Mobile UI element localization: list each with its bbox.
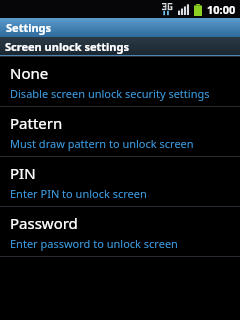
button[interactable]: None [0,57,240,106]
staticText: None [10,63,49,83]
button[interactable]: PIN [0,157,240,206]
staticText: Pattern [10,113,63,133]
button[interactable]: Password [0,207,240,256]
staticText: Screen unlock settings [5,39,129,54]
staticText: PIN [10,163,36,183]
staticText: Settings [6,20,52,35]
other: 3G network [162,3,173,16]
other: Signal strength [178,4,189,15]
staticText: Enter PIN to unlock screen [10,186,147,201]
staticText: Enter password to unlock screen [10,236,178,251]
other: Battery [194,4,202,16]
button[interactable]: Pattern [0,107,240,156]
staticText: Disable screen unlock security settings [10,86,210,101]
staticText: 10:00 [207,2,236,17]
staticText: Password [10,213,78,233]
staticText: Must draw pattern to unlock screen [10,136,194,151]
